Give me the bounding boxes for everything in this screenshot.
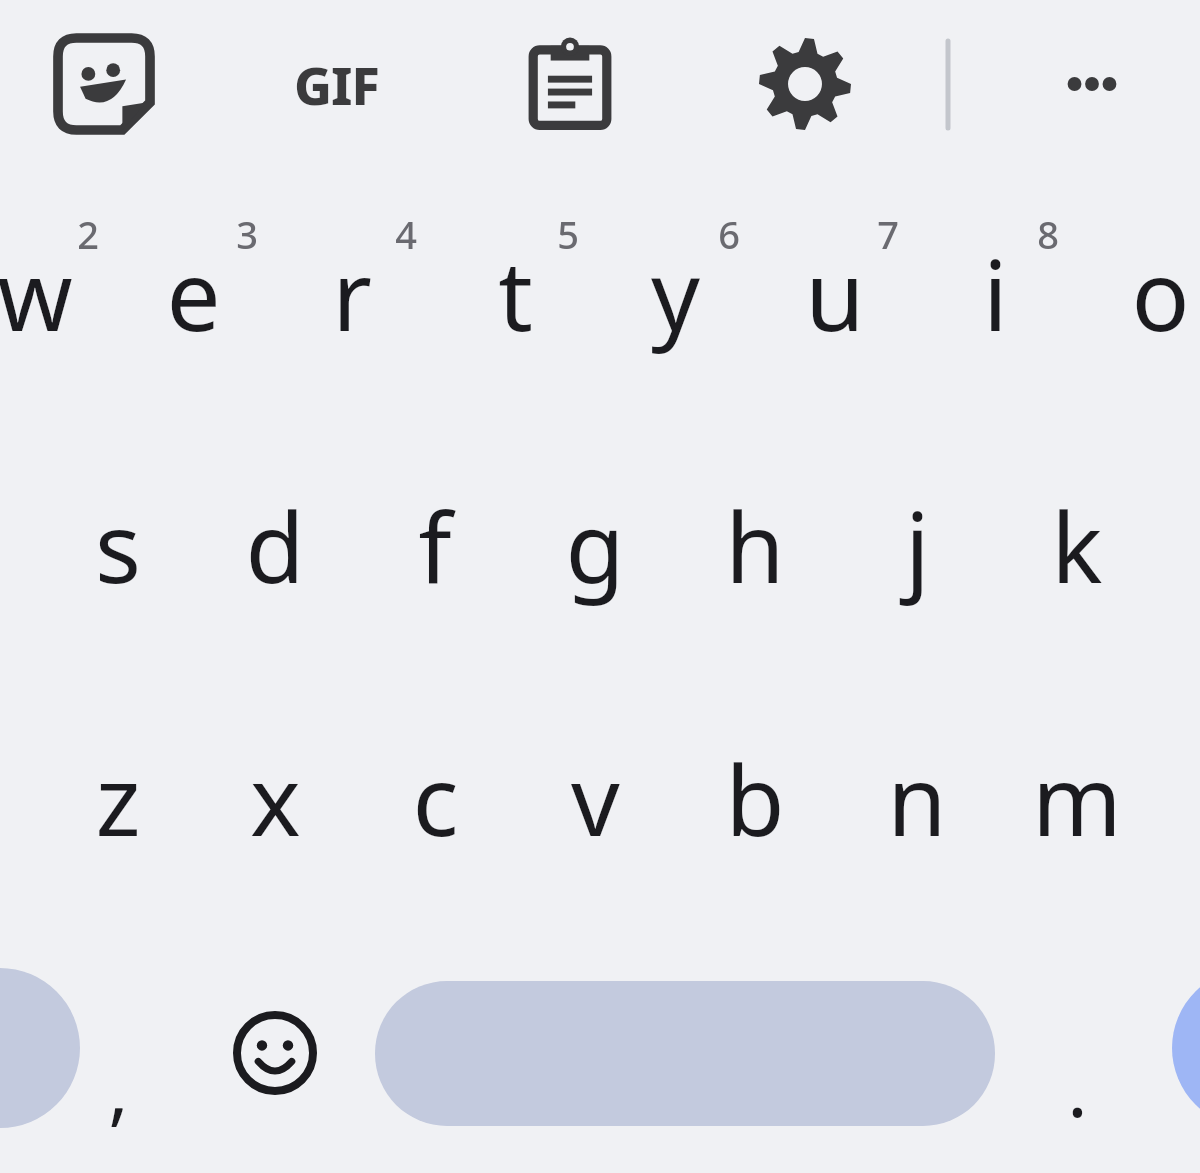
staticText: c <box>412 733 459 864</box>
staticText: i <box>983 228 1008 359</box>
staticText: 4 <box>395 208 417 260</box>
staticText: m <box>1032 733 1122 864</box>
staticText: 3 <box>236 208 258 260</box>
button[interactable]: Clipboard <box>506 20 634 148</box>
button[interactable]: GIF <box>268 20 404 148</box>
staticText: 2 <box>77 208 99 260</box>
staticText: k <box>1051 480 1103 611</box>
button[interactable]: Emoji <box>233 1011 317 1095</box>
staticText: g <box>565 480 625 611</box>
staticText: r <box>332 228 372 359</box>
staticText: w <box>0 228 73 359</box>
staticText: , <box>108 1036 129 1140</box>
staticText: b <box>725 733 785 864</box>
staticText: e <box>166 228 221 359</box>
button[interactable]: Enter <box>1172 968 1200 1128</box>
button[interactable]: More options <box>1028 20 1156 148</box>
button[interactable]: Space <box>375 981 995 1126</box>
staticText: o <box>1131 228 1190 359</box>
button[interactable]: Stickers <box>40 20 168 148</box>
staticText: s <box>95 480 141 611</box>
staticText: . <box>1067 1036 1088 1140</box>
staticText: n <box>887 733 947 864</box>
button[interactable]: Symbols <box>0 968 80 1128</box>
staticText: t <box>498 228 533 359</box>
staticText: v <box>571 733 620 864</box>
button[interactable]: Settings <box>741 20 869 148</box>
staticText: x <box>250 733 301 864</box>
staticText: h <box>725 480 785 611</box>
staticText: f <box>418 480 452 611</box>
staticText: 8 <box>1037 208 1059 260</box>
staticText: j <box>905 480 930 611</box>
staticText: y <box>651 228 700 359</box>
staticText: GIF <box>294 49 379 120</box>
staticText: z <box>95 733 141 864</box>
staticText: 6 <box>718 208 740 260</box>
staticText: 5 <box>557 208 579 260</box>
staticText: 7 <box>877 208 899 260</box>
staticText: d <box>245 480 305 611</box>
staticText: u <box>805 228 865 359</box>
